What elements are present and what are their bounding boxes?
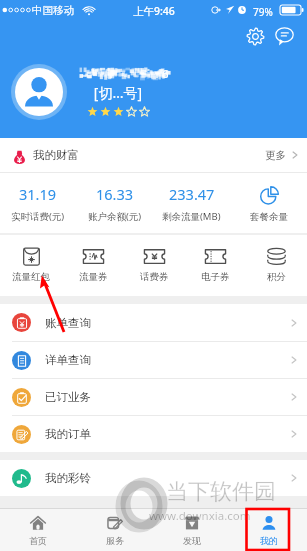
staticText: 流量红包: [12, 271, 50, 283]
button[interactable]: 服务: [76, 509, 153, 551]
staticText: 更多: [265, 149, 286, 162]
staticText: 发现: [183, 535, 201, 546]
staticText: 31.19: [19, 184, 57, 204]
staticText: 中国移动: [32, 4, 74, 17]
button[interactable]: 发现: [153, 509, 230, 551]
button[interactable]: Messages: [271, 23, 298, 50]
staticText: 16.33: [96, 184, 134, 204]
button[interactable]: Avatar: [11, 64, 67, 120]
button[interactable]: 套餐余量: [230, 173, 307, 233]
button[interactable]: 账单查询: [0, 304, 307, 341]
button[interactable]: 流量券: [62, 235, 124, 296]
button[interactable]: 31.19: [0, 173, 76, 233]
staticText: [切…号]: [77, 83, 159, 102]
staticText: 详单查询: [45, 353, 91, 367]
staticText: www.downxia.com: [149, 508, 251, 524]
staticText: 积分: [267, 271, 286, 283]
staticText: 首页: [29, 535, 47, 546]
button[interactable]: 详单查询: [0, 342, 307, 378]
button[interactable]: Settings: [242, 23, 269, 50]
staticText: 电子券: [201, 271, 230, 283]
staticText: 233.47: [169, 184, 215, 204]
staticText: 当下软件园: [166, 478, 276, 506]
staticText: 套餐余量: [250, 211, 288, 223]
staticText: 流量券: [79, 271, 108, 283]
staticText: 79%: [253, 5, 273, 19]
button[interactable]: 我的彩铃: [0, 460, 307, 496]
button[interactable]: 我的: [230, 509, 307, 551]
button[interactable]: 233.47: [153, 173, 230, 233]
button[interactable]: 我的订单: [0, 416, 307, 452]
staticText: 上午9:46: [133, 4, 175, 18]
staticText: 6: [162, 66, 169, 82]
button[interactable]: 流量红包: [0, 235, 62, 296]
staticText: 账单查询: [45, 316, 91, 330]
staticText: 已订业务: [45, 390, 91, 404]
staticText: 我的订单: [45, 427, 91, 441]
button[interactable]: 积分: [246, 235, 307, 296]
staticText: 话费券: [140, 271, 169, 283]
staticText: 账户余额(元): [88, 210, 142, 223]
staticText: 我的彩铃: [45, 471, 91, 485]
staticText: 我的财富: [33, 148, 79, 162]
button[interactable]: 首页: [0, 509, 76, 551]
button[interactable]: 已订业务: [0, 379, 307, 415]
button[interactable]: 我的财富: [0, 138, 307, 172]
button[interactable]: 16.33: [76, 173, 153, 233]
staticText: 我的: [260, 535, 278, 546]
button[interactable]: 话费券: [124, 235, 185, 296]
staticText: 服务: [106, 535, 124, 546]
staticText: 剩余流量(MB): [162, 210, 221, 223]
button[interactable]: 电子券: [185, 235, 246, 296]
staticText: 实时话费(元): [11, 210, 65, 223]
